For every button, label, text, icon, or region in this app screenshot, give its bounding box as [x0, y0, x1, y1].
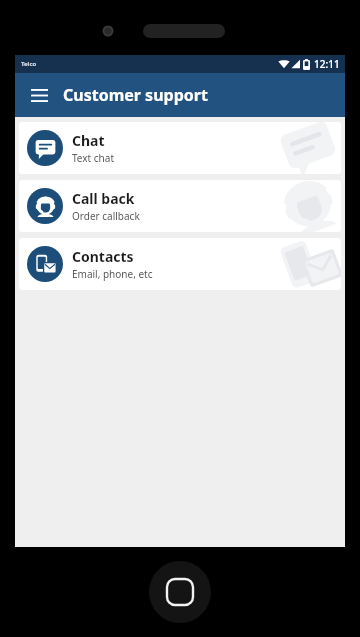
button[interactable]: Call back	[19, 180, 341, 232]
staticText: Contacts	[72, 247, 134, 266]
staticText: Chat	[72, 131, 105, 150]
staticText: Order callback	[72, 209, 140, 223]
button[interactable]: Contacts	[19, 238, 341, 290]
staticText: Email, phone, etc	[72, 267, 153, 281]
staticText: 12:11	[314, 57, 340, 71]
staticText: Text chat	[72, 151, 114, 165]
staticText: Call back	[72, 189, 135, 208]
staticText: Customer support	[63, 84, 208, 106]
button[interactable]: Open navigation menu	[21, 77, 57, 113]
button[interactable]: Chat	[19, 122, 341, 174]
staticText: Telco	[21, 60, 37, 68]
